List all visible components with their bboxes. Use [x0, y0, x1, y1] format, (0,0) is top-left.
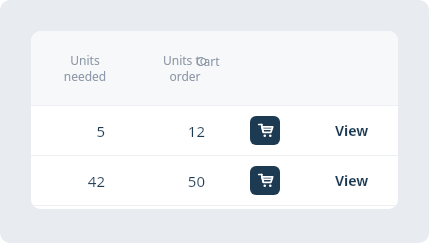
staticText: 42	[35, 171, 105, 191]
button[interactable]: 5	[31, 106, 398, 155]
staticText: 12	[135, 121, 205, 141]
button[interactable]: 42	[31, 156, 398, 205]
button[interactable]: View	[322, 168, 382, 192]
staticText: 5	[35, 121, 105, 141]
staticText: Units needed	[31, 52, 140, 85]
button[interactable]: Add to cart	[250, 166, 280, 195]
staticText: Cart	[196, 53, 306, 69]
button[interactable]: Add to cart	[31, 206, 398, 209]
staticText: Units to order	[130, 52, 240, 85]
staticText: View	[335, 171, 369, 190]
staticText: 50	[135, 171, 205, 191]
button[interactable]: View	[322, 118, 382, 142]
staticText: View	[335, 121, 369, 140]
button[interactable]: Add to cart	[250, 116, 280, 145]
